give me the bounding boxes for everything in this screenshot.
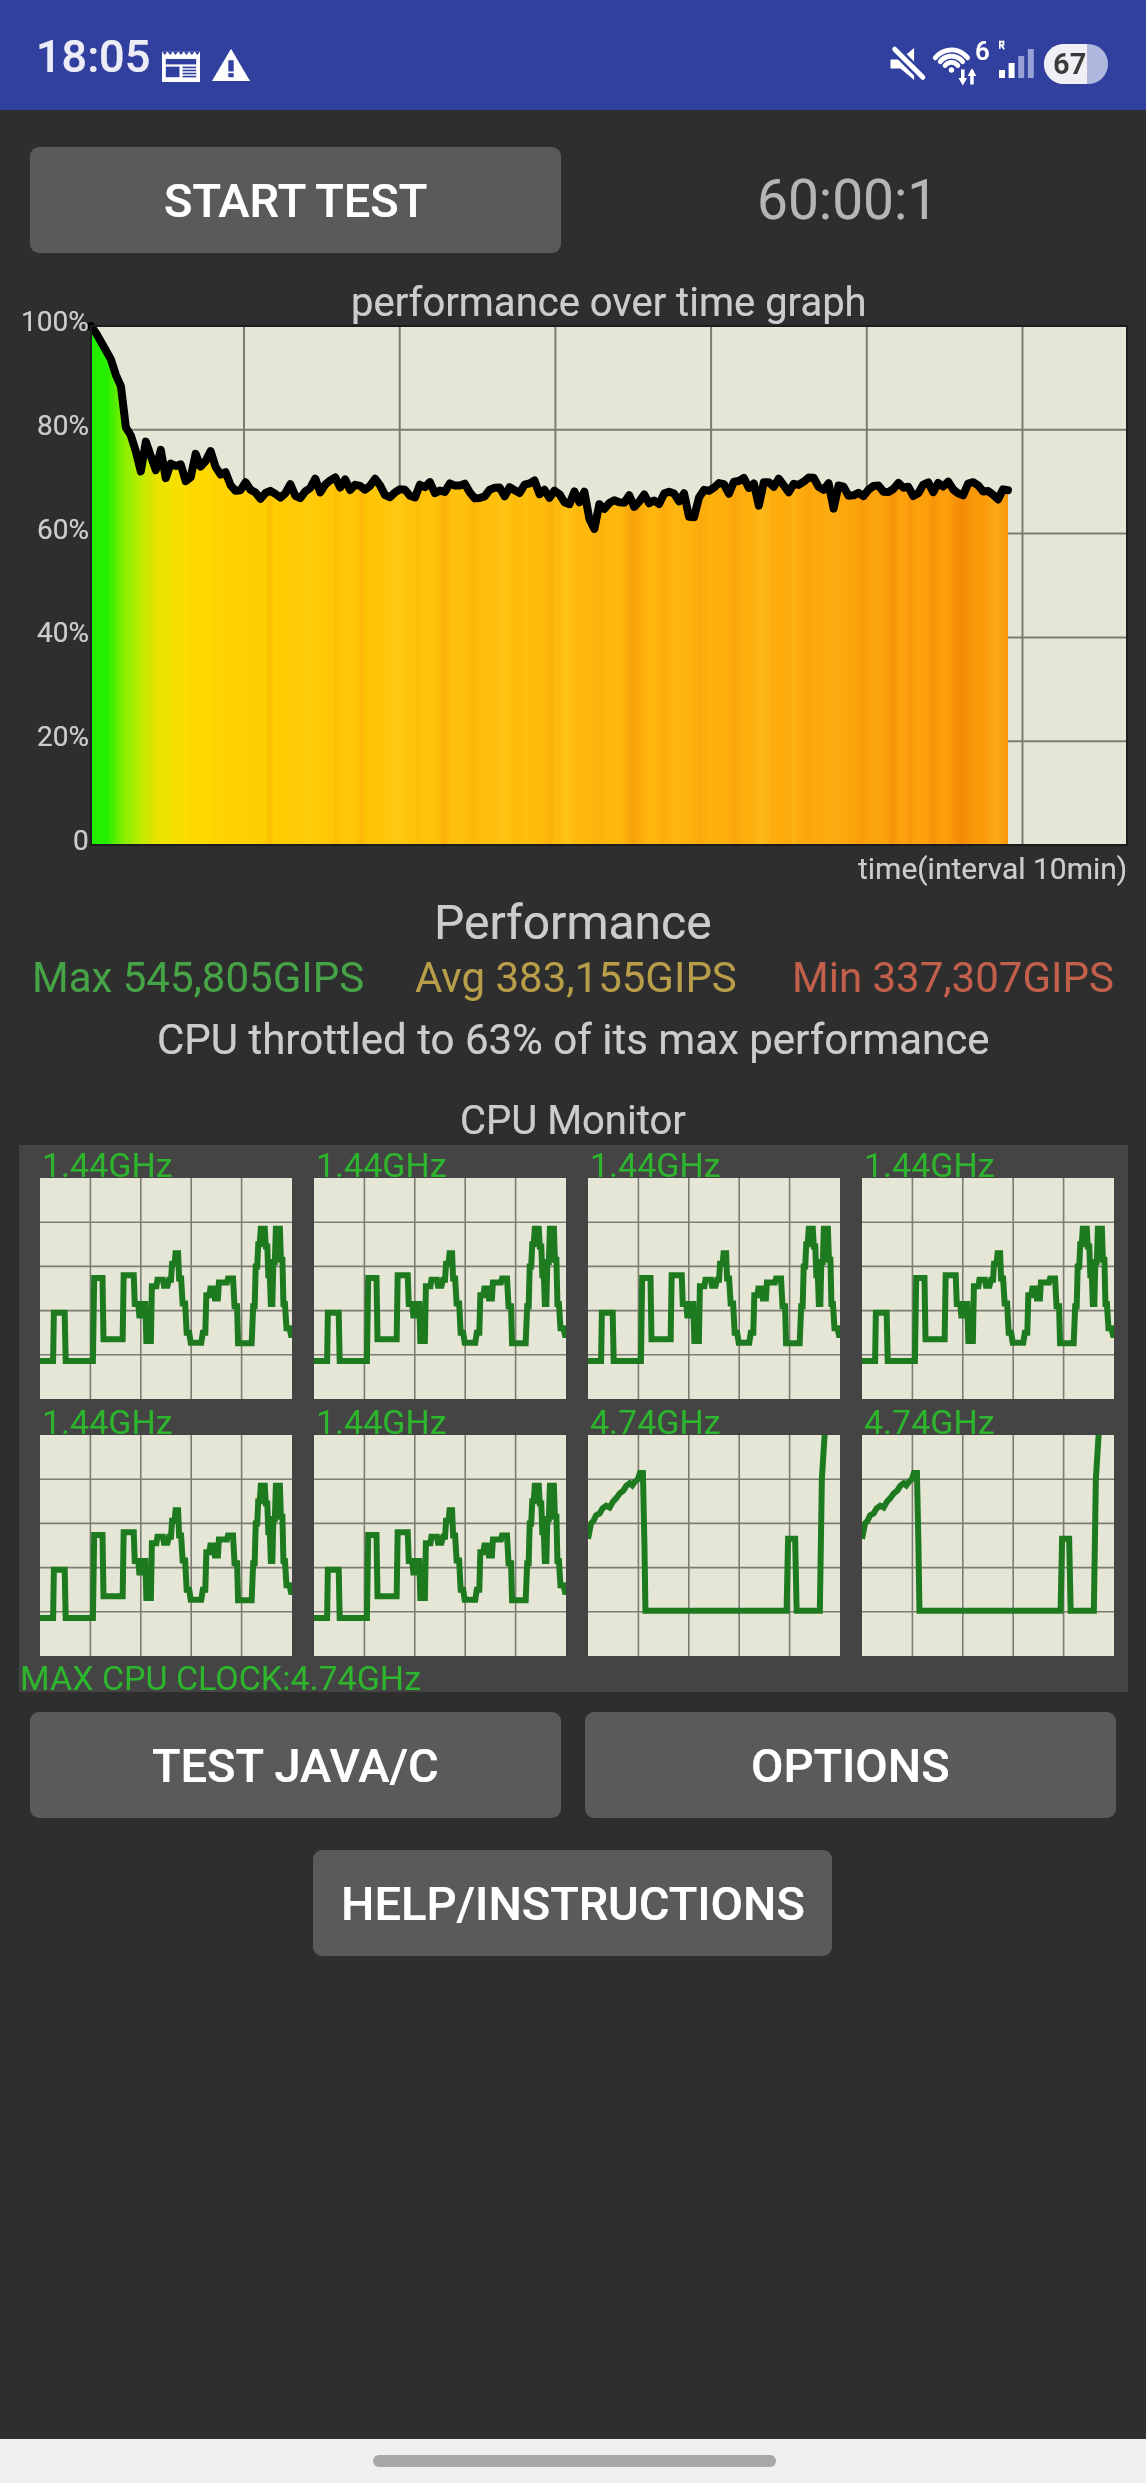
staticText: TEST JAVA/C [152,1738,439,1793]
staticText: 40% [37,616,89,649]
button[interactable]: TEST JAVA/C [30,1712,561,1818]
other: Warning notification [212,48,250,82]
staticText: Min 337,307GIPS [792,953,1114,1002]
staticText: CPU throttled to 63% of its max performa… [157,1015,990,1064]
staticText: 20% [37,720,89,753]
staticText: 80% [37,409,89,442]
staticText: 4.74GHz [864,1402,995,1442]
staticText: 1.44GHz [316,1145,447,1185]
staticText: MAX CPU CLOCK:4.74GHz [20,1658,421,1698]
staticText: Max 545,805GIPS [32,953,365,1002]
other: Wi-Fi [932,37,986,91]
staticText: 60% [37,513,89,546]
staticText: 18:05 [36,30,151,83]
button[interactable]: START TEST [30,147,561,253]
staticText: START TEST [164,173,428,228]
staticText: OPTIONS [751,1738,950,1793]
staticText: time(interval 10min) [858,851,1128,886]
button[interactable]: OPTIONS [585,1712,1116,1818]
staticText: performance over time graph [351,279,867,326]
other: News notification [162,50,200,82]
other: Mobile signal [995,40,1035,80]
staticText: 60:00:1 [757,168,939,232]
staticText: 67 [1053,47,1087,81]
staticText: 0 [73,824,89,857]
staticText: Avg 383,155GIPS [415,953,737,1002]
staticText: 1.44GHz [316,1402,447,1442]
staticText: 100% [21,305,89,338]
staticText: 4.74GHz [590,1402,721,1442]
button[interactable]: HELP/INSTRUCTIONS [313,1850,832,1956]
staticText: 6 [975,36,990,66]
staticText: 1.44GHz [42,1145,173,1185]
button[interactable]: Home gesture bar [0,2439,1146,2483]
staticText: 1.44GHz [590,1145,721,1185]
staticText: HELP/INSTRUCTIONS [341,1876,805,1931]
other: Sound muted [889,45,927,83]
staticText: CPU Monitor [460,1097,686,1144]
staticText: 1.44GHz [42,1402,173,1442]
staticText: Performance [434,894,712,950]
staticText: 1.44GHz [864,1145,995,1185]
